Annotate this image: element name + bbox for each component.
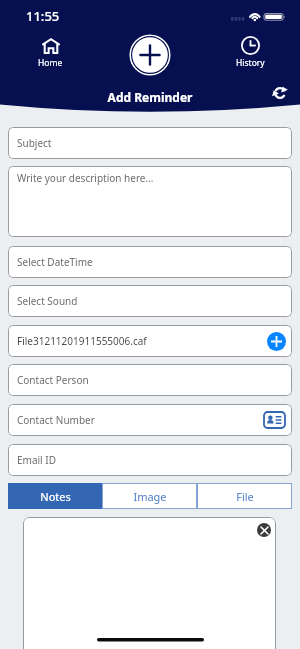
button[interactable]: Notes <box>8 483 102 509</box>
staticText: File31211201911555006.caf <box>17 334 147 348</box>
staticText: Home <box>38 57 63 69</box>
staticText: Contact Number <box>17 413 95 427</box>
staticText: Subject <box>17 136 52 150</box>
button[interactable]: Home <box>28 34 72 70</box>
button[interactable]: Add file <box>267 332 286 351</box>
button[interactable]: Pick contact <box>263 411 286 429</box>
button[interactable]: Refresh <box>268 81 292 105</box>
button[interactable]: History <box>228 34 272 70</box>
button[interactable]: Notes area <box>23 517 276 649</box>
button[interactable]: Contact Number <box>8 404 292 436</box>
button[interactable]: File31211201911555006.caf <box>8 325 292 357</box>
staticText: Select DateTime <box>17 255 93 269</box>
button[interactable]: Image <box>102 483 197 509</box>
button[interactable]: Subject <box>8 127 292 159</box>
button[interactable]: Contact Person <box>8 364 292 396</box>
button[interactable]: Select DateTime <box>8 246 292 278</box>
button[interactable]: Add <box>129 34 171 76</box>
staticText: Select Sound <box>17 294 78 308</box>
staticText: History <box>236 57 265 69</box>
staticText: Write your description here... <box>17 171 154 185</box>
button[interactable]: File <box>197 483 292 509</box>
staticText: Contact Person <box>17 373 89 387</box>
button[interactable]: Write your description here... <box>8 166 292 237</box>
staticText: 11:55 <box>26 7 60 25</box>
button[interactable]: Email ID <box>8 444 292 476</box>
button[interactable]: Select Sound <box>8 285 292 317</box>
staticText: Notes <box>40 489 71 504</box>
staticText: Image <box>133 489 167 504</box>
staticText: Email ID <box>17 453 56 467</box>
staticText: File <box>236 489 254 504</box>
staticText: Add Reminder <box>0 89 300 105</box>
button[interactable]: Close <box>257 523 271 537</box>
